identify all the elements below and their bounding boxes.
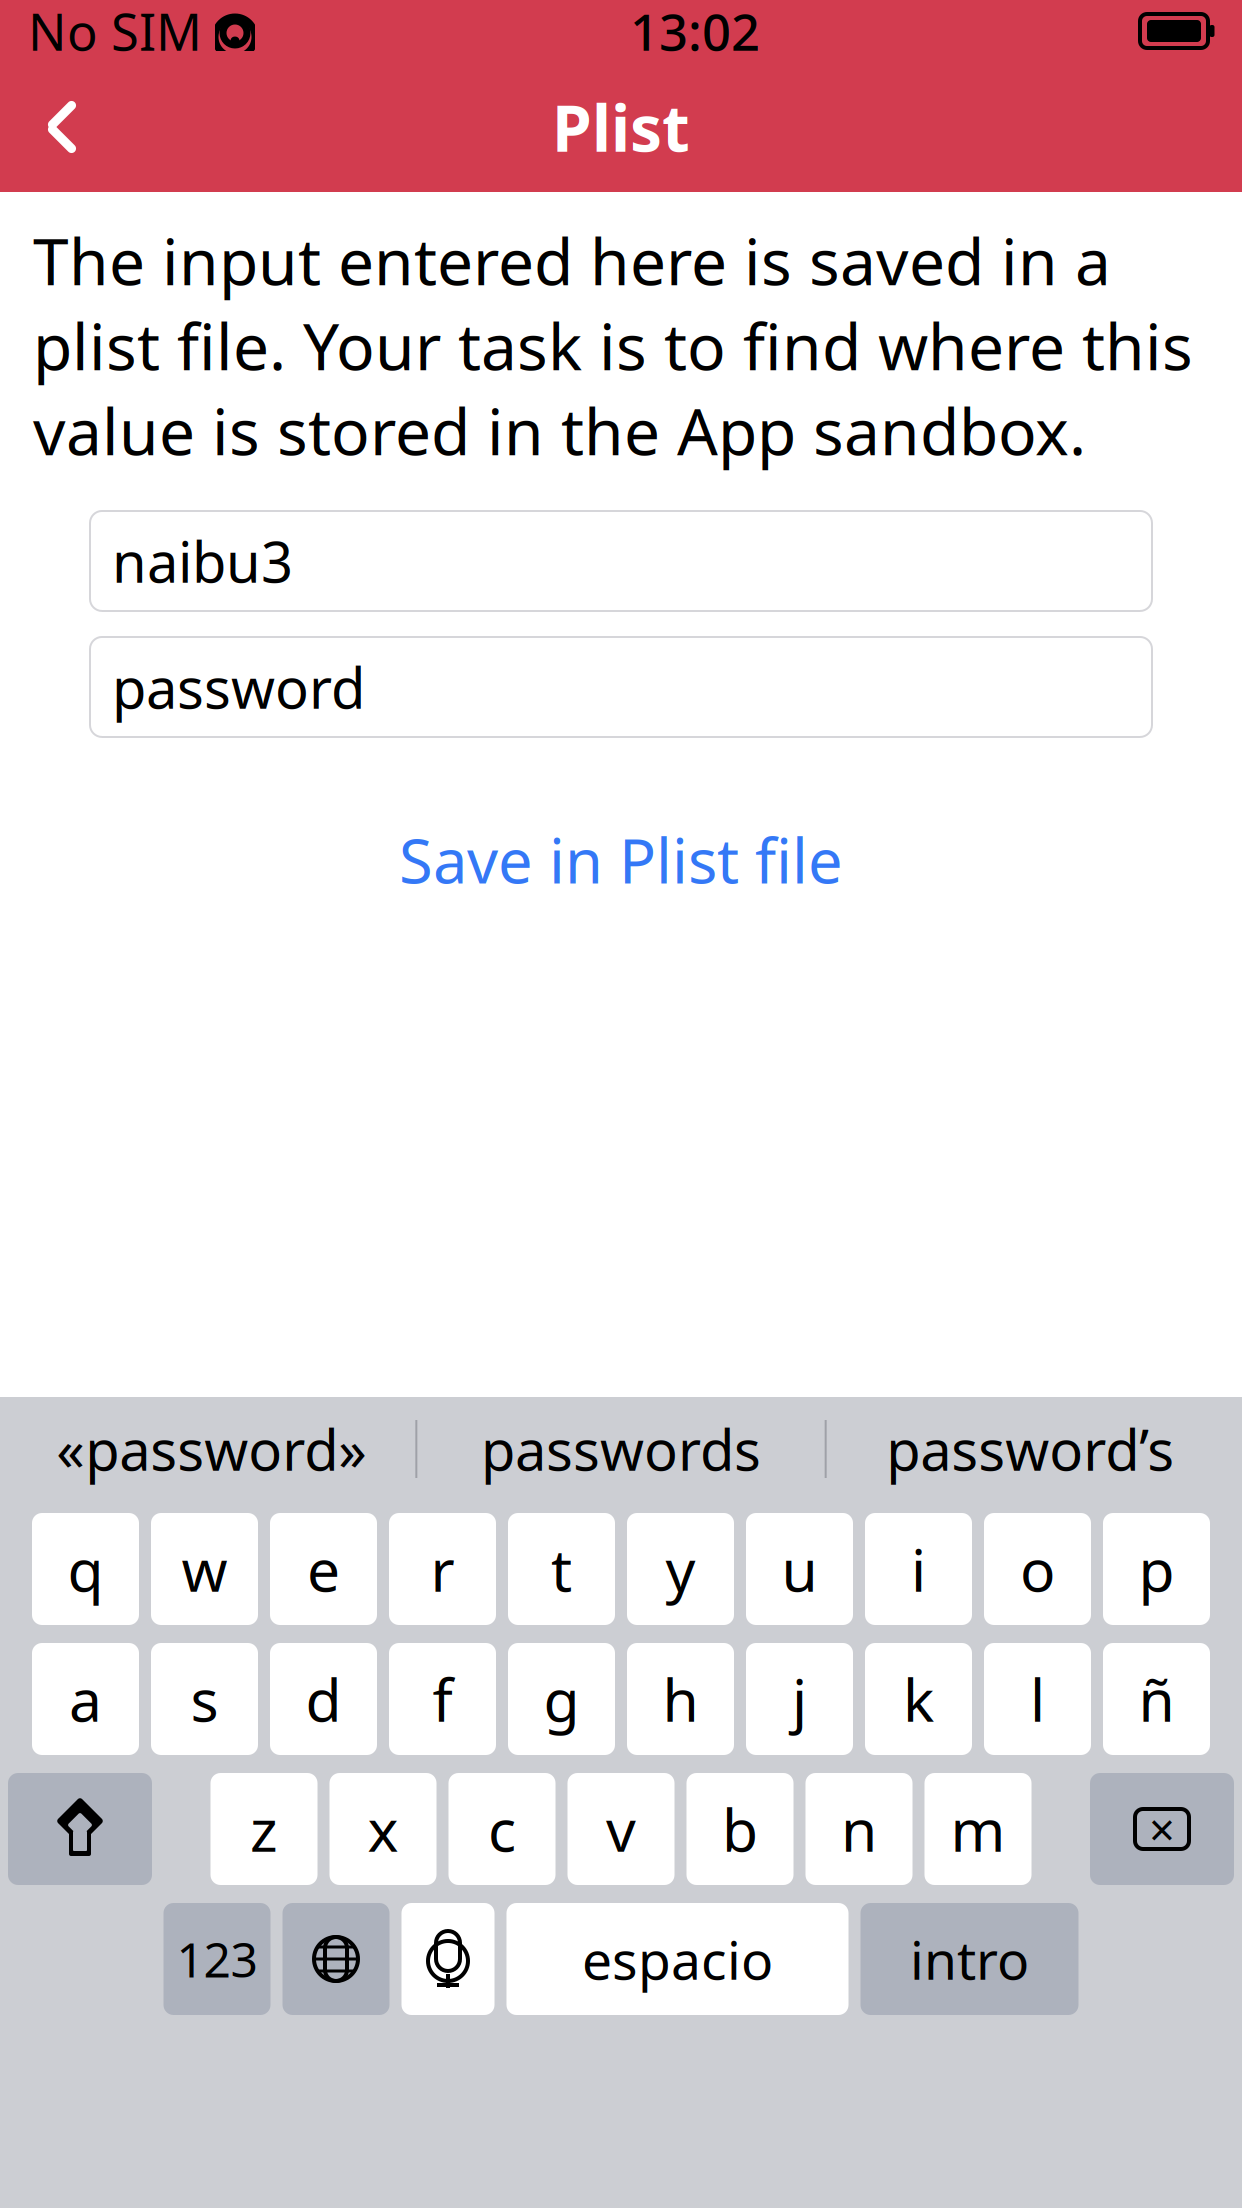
staticText: password’s	[886, 1412, 1174, 1486]
button[interactable]: Space	[506, 1903, 848, 2015]
button[interactable]: b	[686, 1773, 793, 1885]
staticText: espacio	[582, 1924, 773, 1994]
button[interactable]: f	[389, 1643, 496, 1755]
staticText: j	[792, 1660, 807, 1738]
button[interactable]: m	[924, 1773, 1031, 1885]
button[interactable]: a	[32, 1643, 139, 1755]
staticText: u	[781, 1530, 817, 1608]
button[interactable]: o	[984, 1513, 1091, 1625]
staticText: h	[662, 1660, 698, 1738]
button[interactable]: Back	[14, 79, 110, 175]
staticText: b	[722, 1790, 758, 1868]
button[interactable]: y	[627, 1513, 734, 1625]
button[interactable]: password’s	[827, 1397, 1234, 1501]
button[interactable]: Delete	[1090, 1773, 1234, 1885]
staticText: z	[250, 1790, 278, 1868]
staticText: i	[911, 1530, 926, 1608]
button[interactable]: Save in Plist file	[375, 805, 867, 914]
button[interactable]: passwords	[417, 1397, 825, 1501]
button[interactable]: v	[567, 1773, 674, 1885]
button[interactable]: Next keyboard	[282, 1903, 389, 2015]
staticText: No SIM	[28, 0, 202, 65]
staticText: 13:02	[630, 0, 760, 65]
button[interactable]: s	[151, 1643, 258, 1755]
staticText: password	[112, 650, 365, 724]
staticText: passwords	[481, 1412, 761, 1486]
button[interactable]: r	[389, 1513, 496, 1625]
button[interactable]: l	[984, 1643, 1091, 1755]
staticText: d	[305, 1660, 341, 1738]
button[interactable]: t	[508, 1513, 615, 1625]
button[interactable]: ñ	[1103, 1643, 1210, 1755]
staticText: naibu3	[112, 524, 293, 598]
staticText: c	[488, 1790, 516, 1868]
staticText: l	[1030, 1660, 1045, 1738]
button[interactable]: c	[448, 1773, 555, 1885]
staticText: Plist	[552, 84, 690, 169]
button[interactable]: x	[329, 1773, 436, 1885]
staticText: The input entered here is saved in a pli…	[33, 218, 1193, 473]
button[interactable]: k	[865, 1643, 972, 1755]
staticText: «password»	[56, 1412, 367, 1486]
button[interactable]: «password»	[8, 1397, 415, 1501]
staticText: ñ	[1138, 1660, 1174, 1738]
staticText: y	[665, 1530, 695, 1608]
staticText: s	[190, 1660, 218, 1738]
button[interactable]: d	[270, 1643, 377, 1755]
staticText: Save in Plist file	[399, 819, 843, 900]
button[interactable]: i	[865, 1513, 972, 1625]
button[interactable]: n	[805, 1773, 912, 1885]
button[interactable]: w	[151, 1513, 258, 1625]
staticText: k	[903, 1660, 934, 1738]
staticText: o	[1020, 1530, 1055, 1608]
staticText: r	[430, 1530, 454, 1608]
staticText: intro	[910, 1924, 1029, 1994]
button[interactable]: z	[210, 1773, 317, 1885]
button[interactable]: h	[627, 1643, 734, 1755]
staticText: t	[551, 1530, 572, 1608]
staticText: a	[69, 1660, 102, 1738]
staticText: q	[67, 1530, 103, 1608]
button[interactable]: u	[746, 1513, 853, 1625]
staticText: ×	[1149, 1799, 1175, 1859]
staticText: 123	[176, 1927, 257, 1991]
staticText: w	[181, 1530, 227, 1608]
staticText: n	[841, 1790, 877, 1868]
button[interactable]: Numbers	[163, 1903, 270, 2015]
button[interactable]: q	[32, 1513, 139, 1625]
button[interactable]: Dictation	[401, 1903, 494, 2015]
button[interactable]: Shift	[8, 1773, 152, 1885]
button[interactable]: j	[746, 1643, 853, 1755]
staticText: x	[367, 1790, 398, 1868]
staticText: f	[432, 1660, 452, 1738]
button[interactable]: p	[1103, 1513, 1210, 1625]
staticText: e	[307, 1530, 340, 1608]
button[interactable]: e	[270, 1513, 377, 1625]
button[interactable]: Return	[860, 1903, 1078, 2015]
staticText: p	[1138, 1530, 1174, 1608]
staticText: v	[606, 1790, 636, 1868]
staticText: m	[950, 1790, 1005, 1868]
staticText: g	[543, 1660, 579, 1738]
button[interactable]: g	[508, 1643, 615, 1755]
